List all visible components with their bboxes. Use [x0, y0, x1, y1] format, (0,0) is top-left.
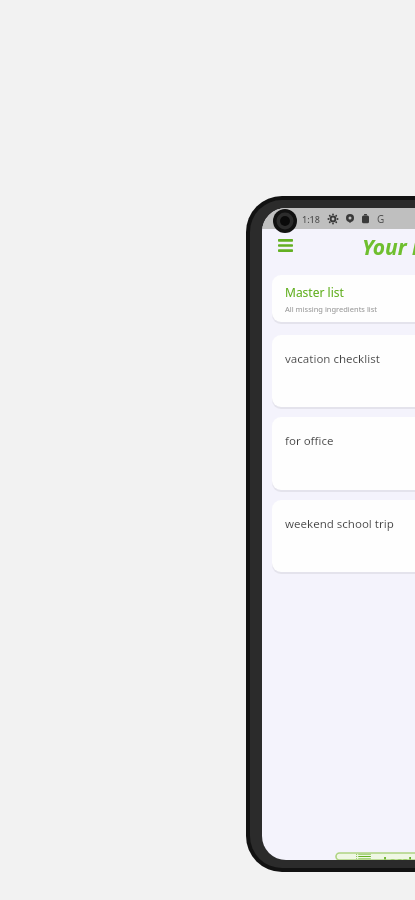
staticText: vacation checklist: [285, 351, 380, 367]
staticText: All missing ingredients list: [285, 304, 378, 314]
button[interactable]: for office: [272, 417, 415, 490]
staticText: for office: [285, 433, 334, 449]
button[interactable]: Open navigation menu: [276, 237, 294, 253]
button[interactable]: Master list: [272, 275, 415, 322]
staticText: weekend school trip: [285, 516, 394, 532]
staticText: 1:18: [302, 213, 320, 225]
button[interactable]: vacation checklist: [272, 335, 415, 407]
button[interactable]: Local: [336, 853, 415, 860]
staticText: Your lists: [362, 233, 415, 262]
staticText: Master list: [285, 284, 344, 300]
button[interactable]: weekend school trip: [272, 500, 415, 572]
staticText: Local: [383, 853, 412, 860]
staticText: G: [377, 212, 385, 226]
